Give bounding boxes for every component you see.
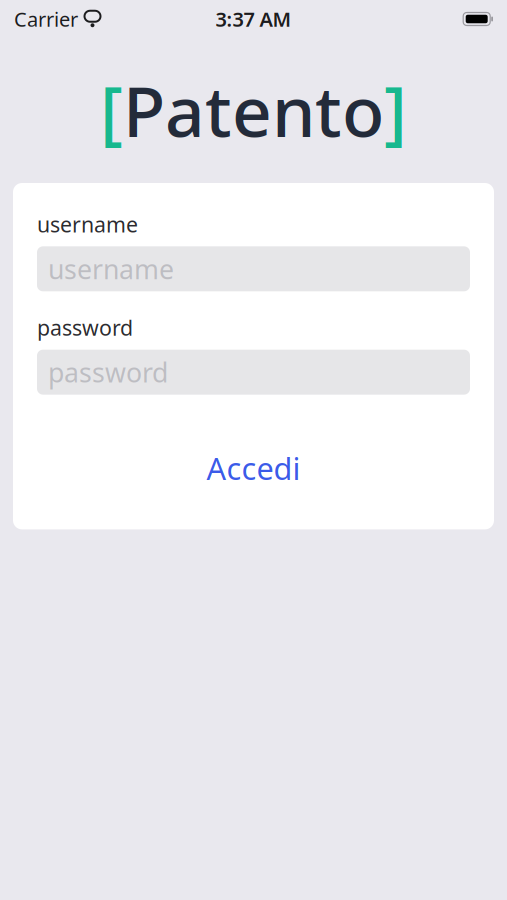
staticText: username — [48, 251, 174, 286]
button[interactable]: username — [37, 246, 470, 291]
staticText: password — [48, 354, 168, 390]
staticText: [ — [100, 64, 123, 156]
staticText: username — [37, 210, 138, 238]
staticText: password — [37, 313, 133, 342]
button[interactable]: password — [37, 350, 470, 395]
staticText: Carrier — [14, 6, 78, 32]
staticText: ] — [384, 64, 407, 156]
button[interactable]: Accedi — [37, 442, 470, 494]
staticText: 3:37 AM — [215, 6, 291, 32]
staticText: Patento — [123, 64, 384, 156]
staticText: Accedi — [206, 448, 300, 488]
